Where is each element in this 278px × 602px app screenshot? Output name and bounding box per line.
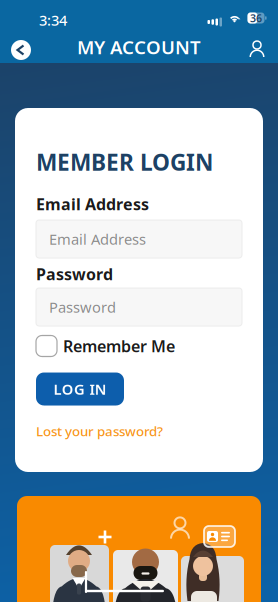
button[interactable]: Password xyxy=(36,288,242,326)
button[interactable] xyxy=(17,496,261,602)
staticText: Email Address xyxy=(36,193,149,215)
staticText: 36 xyxy=(250,11,262,25)
button[interactable]: LOG IN xyxy=(36,372,124,405)
staticText: Lost your password? xyxy=(36,422,163,440)
staticText: LOG IN xyxy=(53,379,107,399)
staticText: Email Address xyxy=(49,229,146,249)
button[interactable] xyxy=(11,40,31,60)
staticText: MY ACCOUNT xyxy=(77,35,201,59)
staticText: 3:34 xyxy=(39,10,67,30)
staticText: Password xyxy=(36,263,113,285)
staticText: MEMBER LOGIN xyxy=(36,147,213,177)
staticText: Remember Me xyxy=(63,335,175,357)
button[interactable]: Remember Me xyxy=(36,335,242,357)
button[interactable]: Lost your password? xyxy=(36,422,242,440)
staticText: Password xyxy=(49,297,116,317)
button[interactable]: Email Address xyxy=(36,220,242,258)
button[interactable] xyxy=(249,39,265,58)
